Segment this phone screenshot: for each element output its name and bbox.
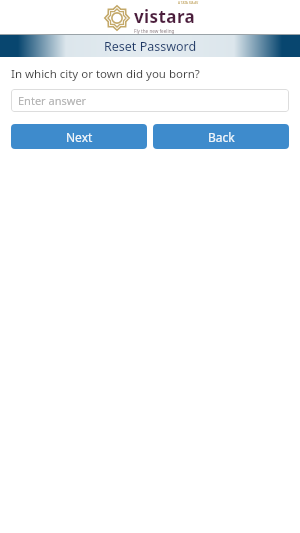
staticText: Reset Password bbox=[104, 38, 197, 55]
staticText: A TATA SIA AV bbox=[178, 1, 199, 5]
button[interactable]: Back bbox=[153, 124, 289, 149]
staticText: vistara bbox=[134, 5, 196, 28]
staticText: In which city or town did you born? bbox=[11, 66, 200, 82]
staticText: Enter answer bbox=[18, 93, 87, 108]
staticText: Fly the new feeling bbox=[134, 28, 175, 34]
button[interactable]: Enter answer bbox=[11, 89, 289, 112]
staticText: Back bbox=[208, 129, 235, 145]
other: Vistara logo bbox=[104, 5, 130, 31]
staticText: Next bbox=[66, 129, 93, 145]
button[interactable]: Next bbox=[11, 124, 147, 149]
